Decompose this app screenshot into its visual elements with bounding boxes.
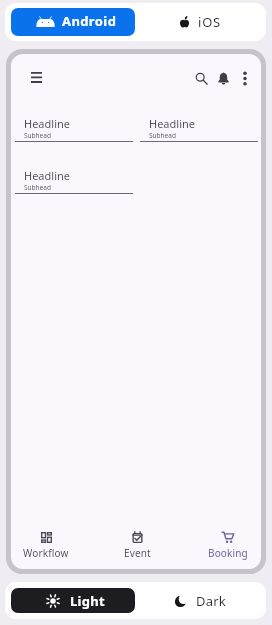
button[interactable]: Navigation menu xyxy=(25,65,47,87)
staticText: Subhead xyxy=(24,183,51,192)
button[interactable]: Headline xyxy=(15,168,133,193)
button[interactable]: More options xyxy=(234,68,255,89)
button[interactable]: Android xyxy=(11,8,135,36)
staticText: Event xyxy=(124,546,151,560)
staticText: Booking xyxy=(208,546,248,560)
button[interactable]: Notifications xyxy=(213,68,234,89)
staticText: Headline xyxy=(24,116,70,131)
staticText: Headline xyxy=(149,116,195,131)
button[interactable]: Booking xyxy=(188,531,261,560)
staticText: iOS xyxy=(198,13,222,31)
staticText: Workflow xyxy=(23,546,69,560)
button[interactable]: iOS xyxy=(135,8,260,36)
button[interactable]: Search xyxy=(189,68,213,89)
staticText: Headline xyxy=(24,168,70,183)
staticText: Android xyxy=(62,12,117,30)
button[interactable]: Headline xyxy=(140,116,258,141)
button[interactable]: Event xyxy=(97,531,177,560)
staticText: Dark xyxy=(196,592,226,610)
staticText: Subhead xyxy=(149,131,176,140)
button[interactable]: Light xyxy=(11,588,135,613)
button[interactable]: Workflow xyxy=(11,532,86,560)
staticText: Subhead xyxy=(24,131,51,140)
staticText: Light xyxy=(70,592,105,610)
button[interactable]: Headline xyxy=(15,116,133,141)
button[interactable]: Dark xyxy=(135,588,260,613)
